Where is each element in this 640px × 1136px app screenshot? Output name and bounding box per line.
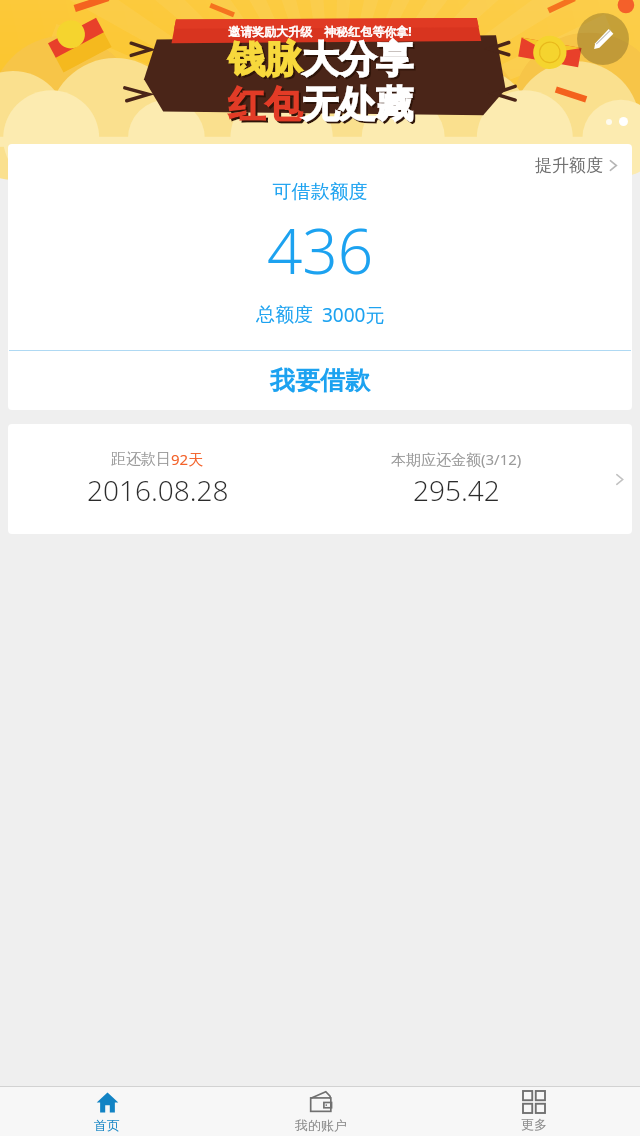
staticText: 92天 xyxy=(171,449,204,469)
staticText: 大分享 xyxy=(304,38,415,85)
button[interactable]: 距还款日 xyxy=(8,424,632,534)
staticText: 无处藏 xyxy=(304,83,415,130)
staticText: 红包 xyxy=(230,83,304,130)
staticText: 我的账户 xyxy=(295,1117,347,1133)
staticText: 距还款日 xyxy=(111,450,171,469)
button[interactable]: 编辑 xyxy=(577,13,629,65)
staticText: 无处藏 xyxy=(302,81,413,128)
staticText: 可借款额度 xyxy=(8,180,632,204)
staticText: 钱脉 xyxy=(230,38,304,85)
button[interactable]: 首页 xyxy=(0,1087,214,1136)
staticText: 红包 xyxy=(228,81,302,128)
button[interactable]: 我要借款 xyxy=(8,351,632,410)
button[interactable]: 提升额度 xyxy=(521,144,632,180)
button[interactable]: 我的账户 xyxy=(214,1087,427,1136)
staticText: 总额度 xyxy=(256,303,313,327)
staticText: 更多 xyxy=(521,1116,547,1132)
staticText: 钱脉 xyxy=(228,36,302,83)
staticText: 首页 xyxy=(94,1117,120,1133)
staticText: 2016.08.28 xyxy=(87,471,229,509)
staticText: 邀请奖励大升级 神秘红包等你拿! xyxy=(228,23,412,39)
staticText: 436 xyxy=(8,208,632,292)
staticText: 295.42 xyxy=(413,471,500,509)
staticText: 大分享 xyxy=(302,36,413,83)
button[interactable]: 更多 xyxy=(427,1087,640,1136)
staticText: 本期应还金额(3/12) xyxy=(391,449,522,469)
staticText: 我要借款 xyxy=(270,365,370,396)
staticText: 3000元 xyxy=(322,302,385,328)
staticText: 提升额度 xyxy=(535,155,603,176)
